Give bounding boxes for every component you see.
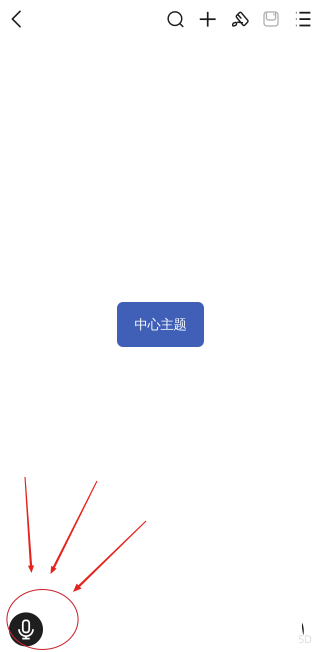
button[interactable]: 中心主题 bbox=[117, 302, 204, 347]
button[interactable]: Back bbox=[0, 0, 36, 40]
button[interactable]: Voice input bbox=[9, 612, 43, 646]
staticText: 5D bbox=[298, 632, 312, 646]
button[interactable]: Outline view bbox=[288, 2, 318, 36]
button[interactable]: Save bbox=[256, 2, 286, 36]
button[interactable]: Style bbox=[225, 2, 255, 36]
button[interactable]: Add topic bbox=[193, 2, 223, 36]
staticText: 中心主题 bbox=[134, 316, 186, 333]
button[interactable]: Search bbox=[160, 2, 190, 36]
